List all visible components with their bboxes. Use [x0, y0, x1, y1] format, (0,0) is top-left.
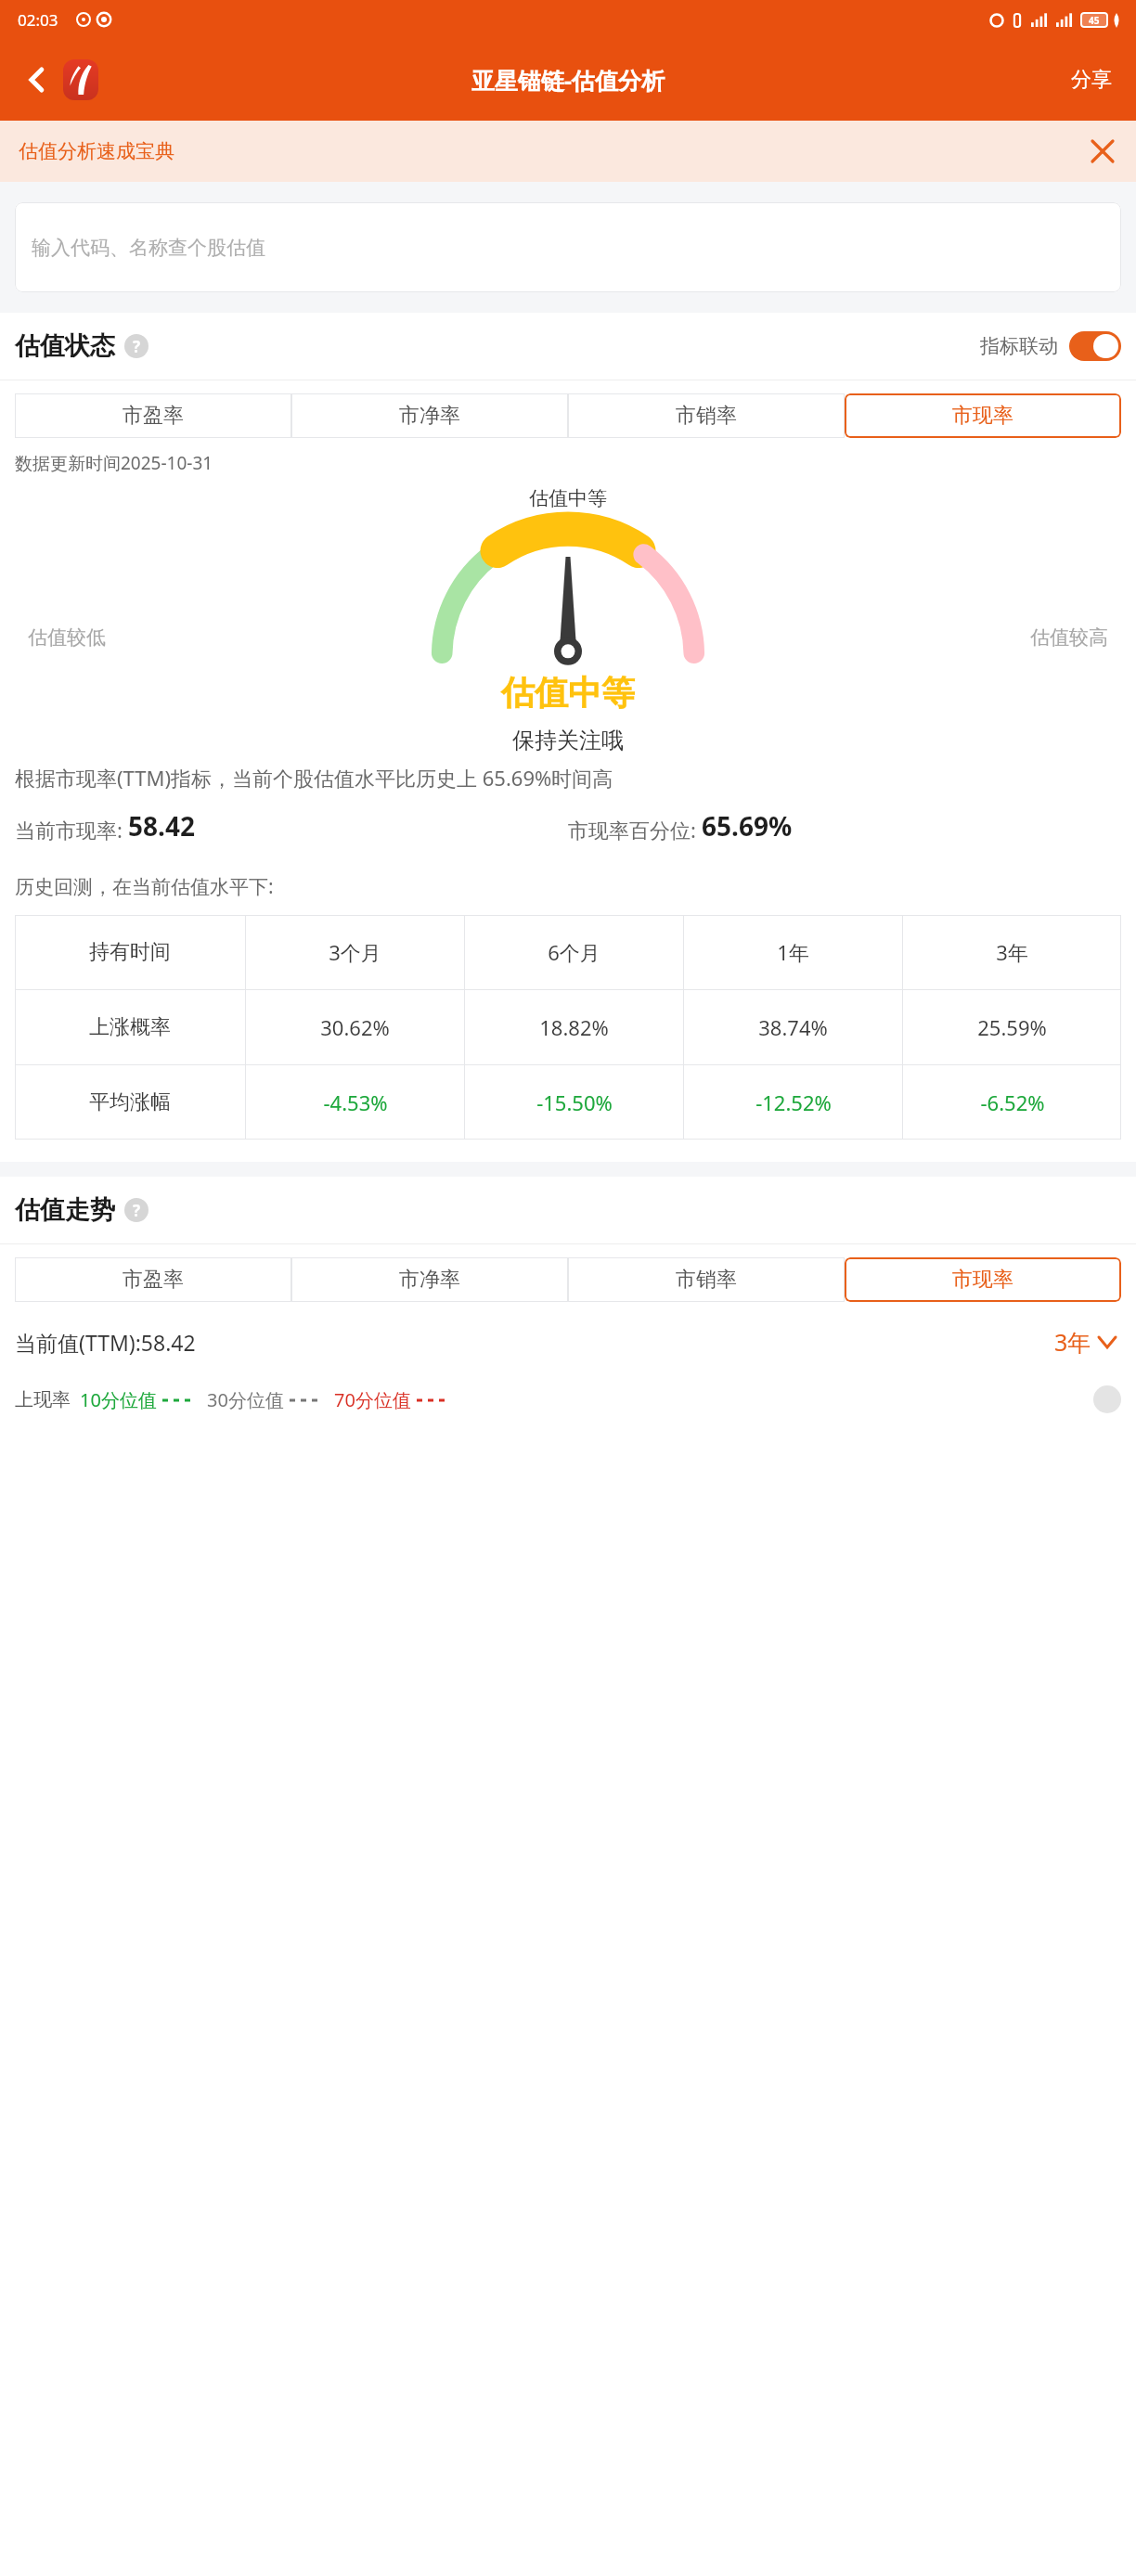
staticText: ? — [133, 336, 141, 357]
staticText: 30分位值 — [207, 1387, 284, 1412]
staticText: 根据市现率(TTM)指标，当前个股估值水平比历史上 65.69%时间高 — [15, 764, 1121, 792]
staticText: 市净率 — [399, 403, 460, 429]
staticText: 25.59% — [977, 1013, 1047, 1041]
staticText: ? — [133, 1200, 141, 1221]
staticText: 输入代码、名称查个股估值 — [32, 236, 265, 260]
staticText: 分享 — [1071, 67, 1112, 93]
staticText: 估值较低 — [28, 625, 106, 650]
staticText: -6.52% — [980, 1088, 1045, 1116]
staticText: 18.82% — [539, 1013, 609, 1041]
button[interactable]: Back — [11, 54, 63, 106]
button[interactable]: 指标联动 — [980, 331, 1121, 361]
staticText: 市盈率 — [123, 1267, 184, 1293]
staticText: 02:03 — [18, 9, 58, 31]
staticText: 估值分析速成宝典 — [19, 139, 174, 163]
staticText: -15.50% — [536, 1088, 613, 1116]
staticText: 65.69% — [702, 808, 793, 844]
staticText: 市现率百分位: — [568, 816, 702, 844]
staticText: 持有时间 — [89, 939, 171, 965]
staticText: 市净率 — [399, 1267, 460, 1293]
staticText: 保持关注哦 — [512, 727, 624, 754]
button[interactable]: 分享 — [1051, 56, 1132, 104]
staticText: 3年 — [1054, 1326, 1091, 1358]
staticText: 估值中等 — [501, 672, 635, 714]
button[interactable]: 市现率 — [845, 1257, 1121, 1302]
staticText: 市销率 — [676, 1267, 737, 1293]
button[interactable]: App logo — [63, 59, 98, 100]
staticText: 当前市现率: — [15, 816, 128, 844]
button[interactable]: Close banner — [1080, 129, 1125, 174]
staticText: 30.62% — [320, 1013, 390, 1041]
button[interactable]: 市净率 — [291, 393, 568, 438]
staticText: 70分位值 — [334, 1387, 411, 1412]
button[interactable]: 市净率 — [291, 1257, 568, 1302]
staticText: 38.74% — [758, 1013, 828, 1041]
staticText: 上涨概率 — [89, 1014, 171, 1040]
staticText: 市销率 — [676, 403, 737, 429]
staticText: 估值走势 — [15, 1194, 115, 1226]
staticText: 市现率 — [952, 403, 1013, 429]
staticText: 45 — [1089, 14, 1100, 27]
staticText: 历史回测，在当前估值水平下: — [15, 873, 274, 900]
staticText: 10分位值 — [80, 1387, 157, 1412]
staticText: 3个月 — [329, 938, 381, 966]
staticText: 上现率 — [15, 1388, 71, 1411]
button[interactable]: Help — [124, 1198, 148, 1222]
staticText: -4.53% — [323, 1088, 388, 1116]
staticText: 指标联动 — [980, 334, 1058, 358]
staticText: 1年 — [777, 938, 809, 966]
button[interactable]: More — [1093, 1385, 1121, 1413]
staticText: 6个月 — [548, 938, 600, 966]
staticText: 市现率 — [952, 1267, 1013, 1293]
staticText: -12.52% — [755, 1088, 832, 1116]
staticText: 市盈率 — [123, 403, 184, 429]
staticText: 亚星锚链-估值分析 — [471, 64, 665, 96]
button[interactable]: 估值分析速成宝典 — [0, 121, 1136, 182]
staticText: 估值状态 — [15, 330, 115, 362]
staticText: 58.42 — [128, 808, 195, 844]
staticText: 估值中等 — [529, 486, 607, 510]
button[interactable]: 3年 — [1049, 1322, 1121, 1361]
button[interactable]: 市现率 — [845, 393, 1121, 438]
staticText: 当前值(TTM):58.42 — [15, 1328, 196, 1357]
button[interactable]: Help — [124, 334, 148, 358]
button[interactable]: 市盈率 — [15, 393, 291, 438]
staticText: 数据更新时间2025-10-31 — [15, 451, 213, 475]
staticText: 3年 — [996, 938, 1028, 966]
button[interactable]: 输入代码、名称查个股估值 — [15, 202, 1121, 292]
staticText: 平均涨幅 — [89, 1089, 171, 1115]
button[interactable]: 市盈率 — [15, 1257, 291, 1302]
staticText: 估值较高 — [1030, 625, 1108, 650]
button[interactable]: 市销率 — [568, 1257, 845, 1302]
button[interactable]: 市销率 — [568, 393, 845, 438]
